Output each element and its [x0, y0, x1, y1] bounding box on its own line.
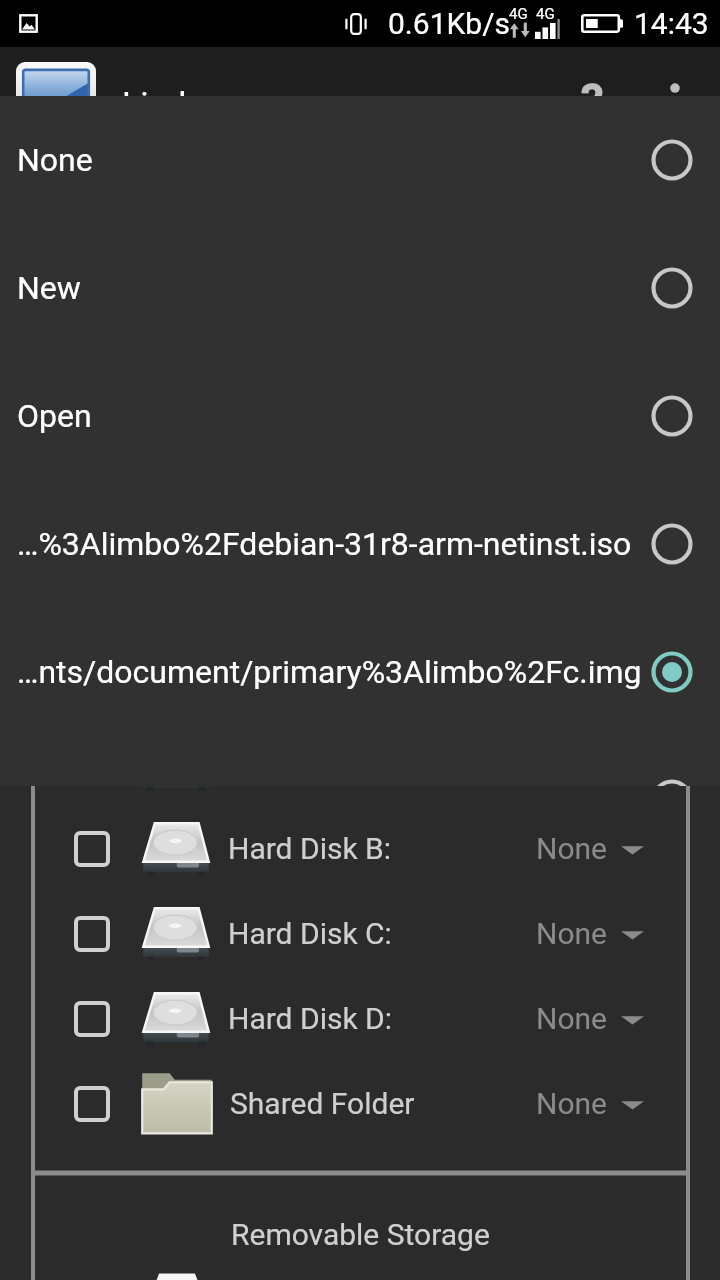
staticText: 0.61Kb/s: [388, 6, 511, 41]
button[interactable]: Hard Disk A:: [0, 721, 720, 806]
button[interactable]: New: [0, 224, 720, 352]
staticText: Open: [17, 397, 92, 435]
button[interactable]: Help: [556, 61, 628, 133]
staticText: ?: [581, 74, 604, 128]
staticText: None: [536, 1086, 607, 1121]
button[interactable]: Open: [0, 352, 720, 480]
button[interactable]: Hard Disk D:: [0, 976, 720, 1061]
staticText: Hard Disk D:: [228, 1001, 393, 1036]
staticText: None: [536, 1001, 607, 1036]
button[interactable]: Hard Disk B:: [0, 806, 720, 891]
staticText: Removable Storage: [231, 1217, 490, 1252]
button[interactable]: None: [0, 96, 720, 224]
staticText: New: [17, 269, 81, 307]
staticText: 4G: [509, 5, 528, 23]
staticText: Limbo: [122, 84, 217, 124]
staticText: None: [536, 916, 607, 951]
staticText: None: [17, 141, 93, 179]
staticText: 14:43: [634, 6, 709, 41]
button[interactable]: More options: [647, 73, 703, 129]
button[interactable]: Hard Disk C:: [0, 891, 720, 976]
staticText: None: [536, 831, 607, 866]
staticText: 4G: [536, 5, 555, 23]
button[interactable]: …%3Alimbo%2Fdebian-31r8-arm-netinst.iso: [0, 480, 720, 608]
button[interactable]: Shared Folder: [0, 1061, 720, 1146]
staticText: Hard Disk B:: [228, 831, 392, 866]
staticText: Hard Disk C:: [228, 916, 392, 951]
button[interactable]: …nts/document/primary%3Alimbo%2Fc.img: [0, 608, 720, 736]
staticText: Shared Folder: [230, 1086, 415, 1121]
staticText: …%3Alimbo%2Fdebian-31r8-arm-netinst.iso: [17, 525, 632, 563]
staticText: …nts/document/primary%3Alimbo%2Fc.img: [17, 653, 642, 691]
button[interactable]: [0, 736, 720, 786]
